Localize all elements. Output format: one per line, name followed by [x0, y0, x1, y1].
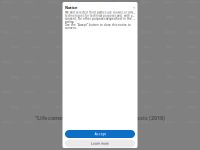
- staticText: shop now: [118, 0, 130, 4]
- staticText: Accept: [94, 132, 105, 136]
- staticText: shop now: [100, 15, 111, 19]
- staticText: We and selected third parties use cookie…: [65, 11, 135, 14]
- staticText: shop now: [55, 15, 67, 19]
- staticText: technologies for technical purposes and,…: [65, 14, 135, 17]
- staticText: shop now: [55, 105, 67, 109]
- staticText: Notice: [65, 5, 77, 10]
- staticText: shop now: [78, 15, 89, 19]
- staticText: policy.: [65, 20, 74, 24]
- staticText: Learn more: [91, 141, 109, 146]
- staticText: ×: [133, 5, 135, 10]
- staticText: consent, for other purposes as specified…: [65, 17, 135, 20]
- staticText: “Life comes at you fast” — an internet c…: [35, 114, 165, 122]
- staticText: Use the “Accept” button to close this no…: [65, 23, 131, 27]
- staticText: shop now: [72, 0, 84, 4]
- button[interactable]: Learn more: [65, 139, 135, 147]
- button[interactable]: Close: [133, 5, 135, 10]
- staticText: shop now: [95, 0, 107, 4]
- staticText: shop now: [55, 45, 67, 49]
- staticText: shop now: [122, 15, 133, 19]
- staticText: shop now: [55, 75, 67, 79]
- staticText: shop now: [141, 120, 153, 124]
- button[interactable]: Accept: [65, 130, 135, 138]
- staticText: consent.: [65, 26, 77, 30]
